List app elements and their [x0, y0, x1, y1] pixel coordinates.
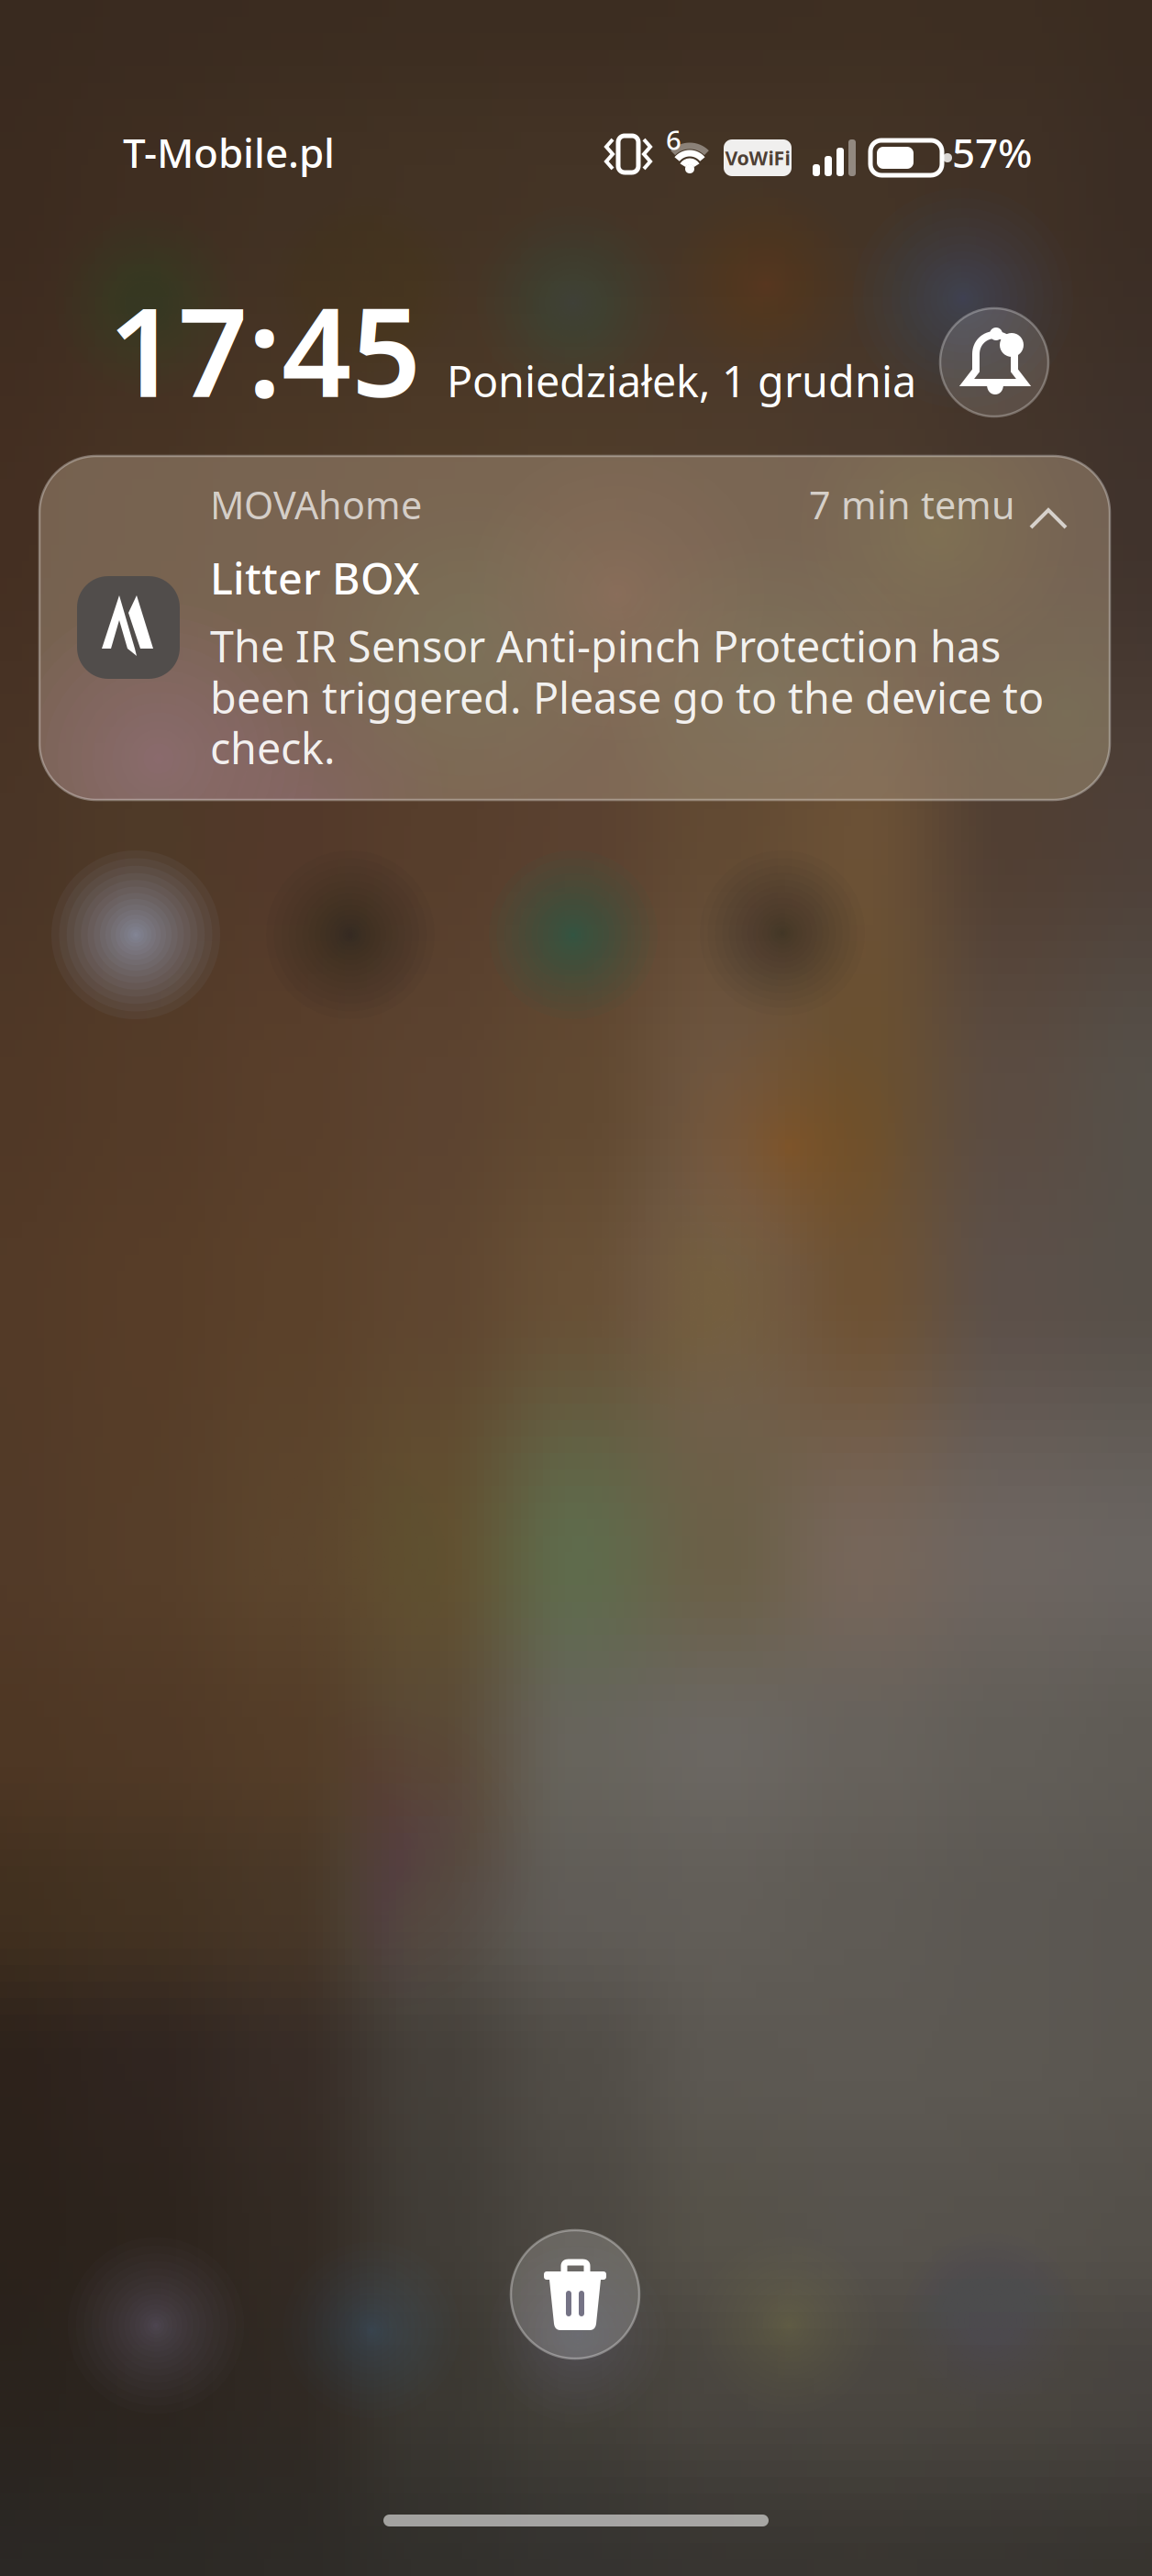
staticText: Poniedziałek, 1 grudnia	[447, 352, 916, 409]
button[interactable]: Clear all notifications	[511, 2230, 639, 2359]
button[interactable]: Notification settings	[940, 308, 1048, 416]
staticText: MOVAhome	[210, 479, 422, 530]
staticText: Litter BOX	[210, 550, 420, 606]
staticText: 57%	[952, 125, 1032, 179]
staticText: VoWiFi	[725, 145, 790, 171]
staticText: 7 min temu	[809, 479, 1015, 530]
staticText: The IR Sensor Anti-pinch Protection has	[210, 617, 1001, 674]
button[interactable]: MOVAhome	[39, 456, 1110, 800]
staticText: 6	[666, 122, 681, 157]
staticText: been triggered. Please go to the device …	[210, 669, 1044, 726]
staticText: T-Mobile.pl	[123, 125, 335, 179]
staticText: check.	[210, 719, 336, 776]
staticText: 17:45	[108, 268, 421, 431]
